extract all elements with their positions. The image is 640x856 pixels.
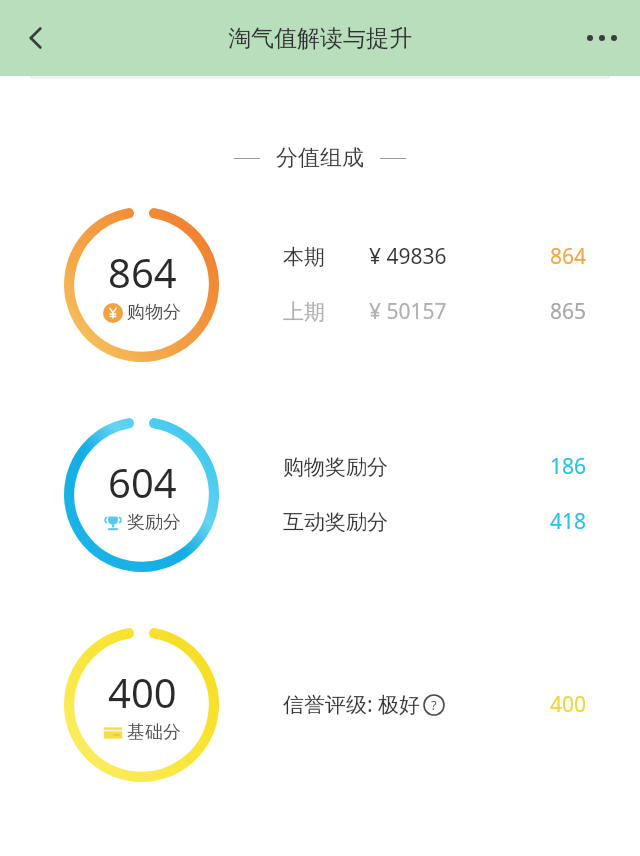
staticText: 分值组成 <box>276 144 364 172</box>
staticText: 基础分 <box>127 721 181 744</box>
staticText: 购物奖励分 <box>283 454 516 480</box>
button[interactable]: Back <box>8 9 66 67</box>
staticText: ¥ 50157 <box>369 297 517 326</box>
button[interactable]: 400 <box>64 627 219 782</box>
button[interactable]: 864 <box>64 207 219 362</box>
staticText: 上期 <box>283 299 369 325</box>
staticText: 864 <box>108 245 177 299</box>
staticText: 400 <box>108 665 177 719</box>
staticText: ? <box>431 696 437 714</box>
button[interactable]: More options <box>574 10 630 66</box>
button[interactable]: 604 <box>64 417 219 572</box>
staticText: 418 <box>516 507 586 536</box>
staticText: 186 <box>516 452 586 481</box>
staticText: 信誉评级: 极好 <box>283 690 421 719</box>
staticText: 864 <box>517 242 586 271</box>
staticText: 865 <box>517 297 586 326</box>
staticText: 604 <box>108 455 177 509</box>
button[interactable]: 信誉评级: 极好 <box>283 690 516 719</box>
staticText: ¥ 49836 <box>369 242 517 271</box>
staticText: 400 <box>516 690 586 719</box>
staticText: 购物分 <box>127 301 181 324</box>
staticText: 本期 <box>283 244 369 270</box>
staticText: 奖励分 <box>127 511 181 534</box>
staticText: 淘气值解读与提升 <box>228 24 412 53</box>
staticText: 互动奖励分 <box>283 509 516 535</box>
